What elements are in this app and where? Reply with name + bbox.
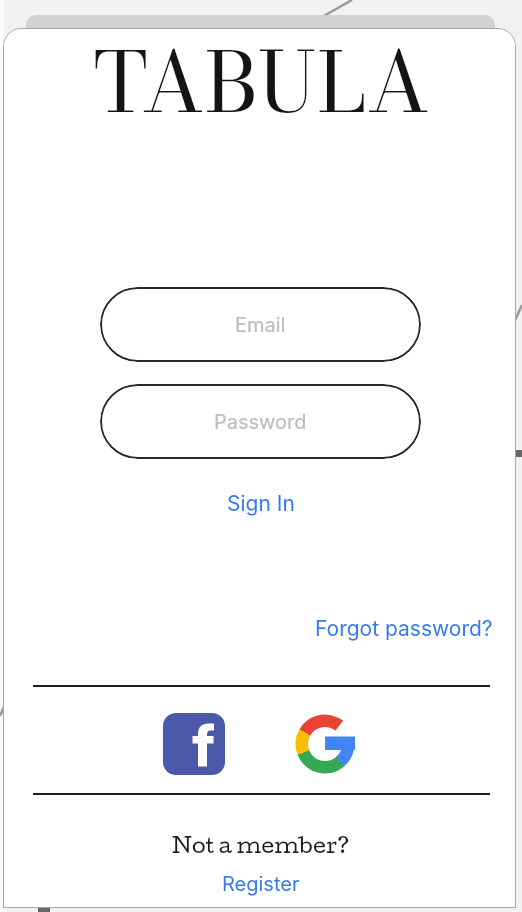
staticText: Not a member? [172, 832, 350, 858]
staticText: Forgot password? [315, 616, 493, 641]
staticText: Password [214, 410, 307, 434]
button[interactable]: Email [100, 287, 421, 362]
button[interactable] [163, 713, 225, 775]
staticText: Email [235, 313, 286, 337]
button[interactable]: Password [100, 384, 421, 459]
button[interactable]: Register [222, 872, 300, 896]
button[interactable] [294, 713, 356, 775]
button[interactable]: Forgot password? [315, 616, 493, 641]
button[interactable]: Sign In [227, 491, 295, 516]
staticText: Register [222, 872, 300, 896]
staticText: TABULA [93, 20, 430, 140]
staticText: Sign In [227, 491, 295, 516]
